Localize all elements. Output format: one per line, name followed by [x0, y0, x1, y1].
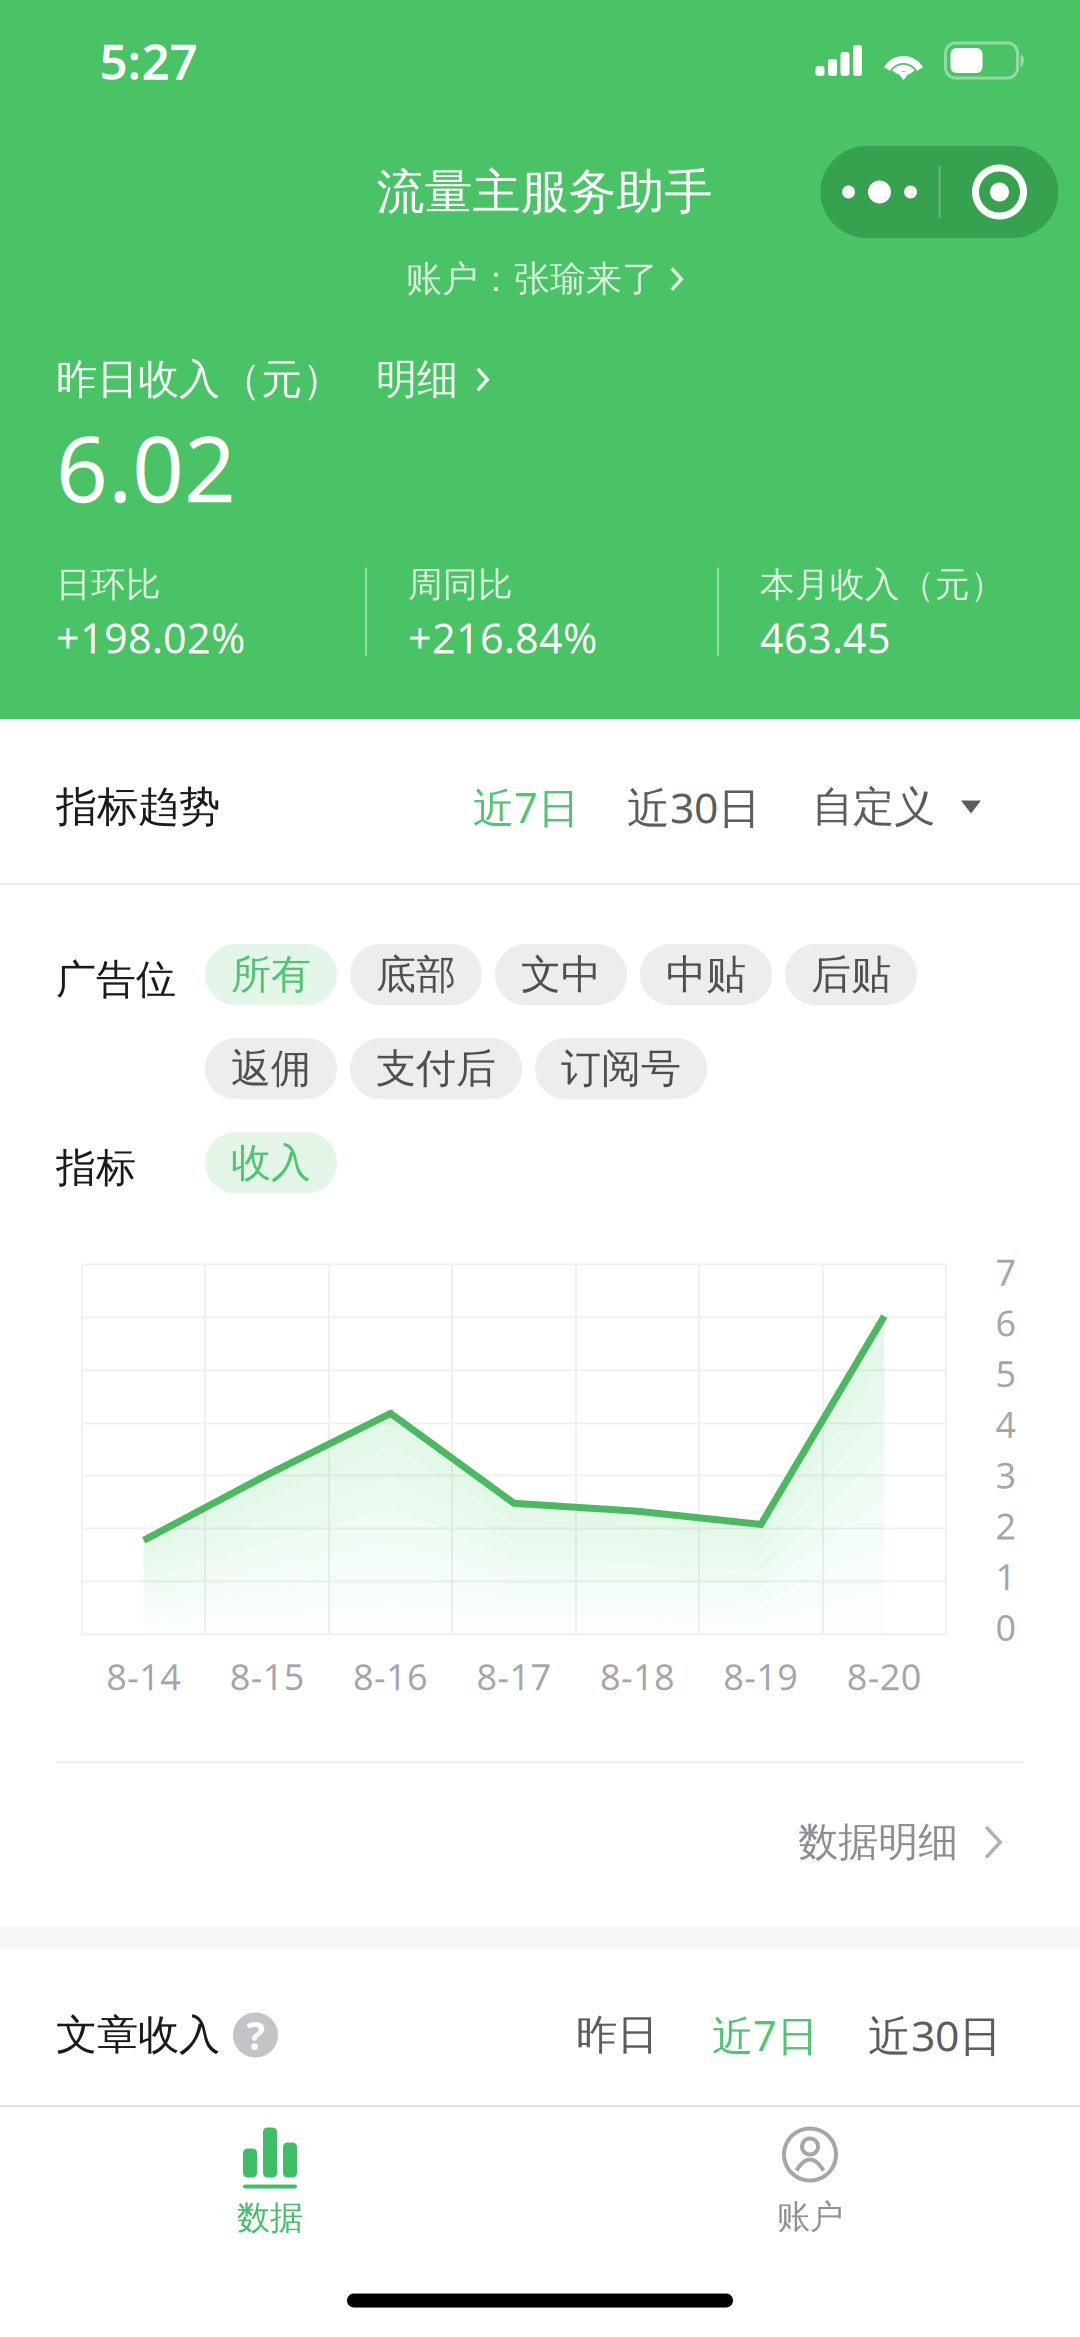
- staticText: 数据: [237, 2197, 303, 2238]
- staticText: 日环比: [56, 563, 161, 606]
- staticText: 中贴: [666, 950, 746, 999]
- staticText: 6: [995, 1299, 1016, 1346]
- staticText: 昨日: [576, 2010, 658, 2060]
- staticText: 昨日收入（元）: [56, 354, 343, 405]
- staticText: +216.84%: [408, 610, 597, 665]
- button[interactable]: 所有: [205, 944, 337, 1005]
- button[interactable]: 返佣: [205, 1038, 337, 1099]
- button[interactable]: Close mini program: [940, 146, 1058, 238]
- button[interactable]: 昨日收入（元）: [56, 354, 1069, 405]
- staticText: 4: [995, 1400, 1016, 1448]
- button[interactable]: 近7日: [712, 1986, 818, 2084]
- staticText: 订阅号: [561, 1044, 681, 1093]
- staticText: 5:27: [99, 28, 197, 93]
- button[interactable]: 数据明细: [56, 1763, 1024, 1941]
- button[interactable]: 数据: [0, 2106, 540, 2263]
- button[interactable]: 支付后: [350, 1038, 522, 1099]
- staticText: 流量主服务助手: [376, 162, 712, 221]
- button[interactable]: 文中: [495, 944, 627, 1005]
- staticText: ?: [246, 2009, 264, 2061]
- button[interactable]: 后贴: [785, 944, 917, 1005]
- staticText: 8-17: [476, 1652, 551, 1700]
- staticText: 8-18: [600, 1652, 675, 1700]
- staticText: 1: [995, 1552, 1016, 1600]
- staticText: 本月收入（元）: [760, 563, 1005, 606]
- staticText: 7: [995, 1248, 1016, 1296]
- staticText: 8-15: [230, 1652, 305, 1700]
- staticText: 8-19: [723, 1652, 798, 1700]
- button[interactable]: 账户: [540, 2107, 1080, 2262]
- staticText: 数据明细: [798, 1818, 958, 1867]
- staticText: 8-20: [847, 1652, 922, 1700]
- staticText: 3: [995, 1451, 1016, 1499]
- staticText: 8-16: [353, 1652, 428, 1700]
- staticText: 指标: [56, 1143, 136, 1192]
- button[interactable]: 近30日: [868, 1985, 1002, 2085]
- staticText: 明细: [376, 354, 458, 405]
- staticText: 文章收入: [56, 2010, 220, 2060]
- button[interactable]: 收入: [205, 1132, 337, 1193]
- button[interactable]: 账户：张瑜来了: [406, 257, 683, 301]
- staticText: 收入: [231, 1138, 311, 1187]
- button[interactable]: 近7日: [473, 758, 579, 856]
- staticText: 近30日: [868, 2007, 1002, 2063]
- staticText: +198.02%: [56, 610, 245, 665]
- staticText: 周同比: [408, 563, 513, 606]
- staticText: 账户：张瑜来了: [406, 257, 658, 301]
- staticText: 5: [995, 1349, 1016, 1397]
- button[interactable]: 中贴: [640, 944, 772, 1005]
- button[interactable]: 自定义: [812, 760, 981, 854]
- button[interactable]: 近30日: [627, 757, 761, 857]
- button[interactable]: More: [820, 146, 938, 238]
- staticText: 自定义: [812, 782, 935, 832]
- staticText: 文中: [521, 950, 601, 999]
- button[interactable]: 订阅号: [535, 1038, 707, 1099]
- staticText: 近30日: [627, 779, 761, 835]
- staticText: 0: [995, 1603, 1016, 1651]
- staticText: 8-14: [106, 1652, 181, 1700]
- button[interactable]: 底部: [350, 944, 482, 1005]
- staticText: 广告位: [56, 955, 176, 1004]
- staticText: 463.45: [760, 610, 891, 665]
- staticText: 近7日: [473, 780, 579, 834]
- staticText: 指标趋势: [56, 782, 220, 832]
- staticText: 后贴: [811, 950, 891, 999]
- staticText: 6.02: [56, 407, 236, 527]
- staticText: 近7日: [712, 2008, 818, 2062]
- staticText: 底部: [376, 950, 456, 999]
- staticText: 账户: [777, 2196, 843, 2237]
- staticText: 返佣: [231, 1044, 311, 1093]
- staticText: 支付后: [376, 1044, 496, 1093]
- button[interactable]: Help about article income: [229, 2005, 282, 2065]
- staticText: 所有: [231, 950, 311, 999]
- staticText: 2: [995, 1502, 1016, 1549]
- button[interactable]: 昨日: [576, 1988, 658, 2082]
